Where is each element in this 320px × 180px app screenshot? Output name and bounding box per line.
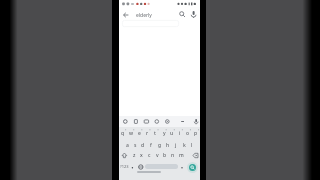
button[interactable]: e [135, 128, 143, 139]
button[interactable]: d [139, 140, 147, 151]
button[interactable]: u [168, 128, 176, 139]
button[interactable]: c [145, 150, 153, 161]
button[interactable] [130, 117, 139, 127]
button[interactable] [190, 150, 199, 161]
staticText: k [183, 142, 186, 149]
button[interactable]: a [123, 140, 131, 151]
button[interactable]: z [130, 150, 138, 161]
staticText: q [121, 130, 125, 137]
button[interactable]: i [176, 128, 184, 139]
staticText: r [146, 130, 149, 137]
button[interactable] [145, 164, 178, 169]
button[interactable]: h [164, 140, 172, 151]
staticText: i [179, 130, 181, 137]
button[interactable]: l [188, 140, 196, 151]
button[interactable] [163, 117, 172, 127]
button[interactable] [121, 117, 130, 127]
staticText: b [163, 152, 167, 159]
staticText: elderly [136, 12, 152, 19]
staticText: c [148, 152, 151, 159]
button[interactable]: b [161, 150, 169, 161]
button[interactable]: g [156, 140, 164, 151]
button[interactable]: p [192, 128, 200, 139]
staticText: n [171, 152, 175, 159]
staticText: w [129, 130, 134, 137]
staticText: m [179, 152, 184, 159]
staticText: ?123 [120, 164, 129, 169]
button[interactable]: y [160, 128, 168, 139]
button[interactable] [120, 9, 132, 21]
staticText: j [175, 142, 177, 149]
button[interactable]: s [131, 140, 139, 151]
button[interactable] [178, 162, 186, 173]
staticText: g [158, 142, 162, 149]
staticText: d [141, 142, 145, 149]
button[interactable] [188, 9, 199, 20]
staticText: t [154, 130, 156, 137]
button[interactable]: w [127, 128, 135, 139]
staticText: s [134, 142, 137, 149]
button[interactable] [129, 162, 136, 173]
button[interactable] [119, 162, 129, 173]
staticText: v [156, 152, 159, 159]
button[interactable]: f [147, 140, 155, 151]
button[interactable]: k [180, 140, 188, 151]
button[interactable]: t [151, 128, 159, 139]
button[interactable]: x [137, 150, 145, 161]
button[interactable]: n [169, 150, 177, 161]
button[interactable] [140, 117, 149, 127]
button[interactable] [120, 150, 129, 161]
staticText: p [194, 130, 198, 137]
button[interactable]: m [177, 150, 185, 161]
button[interactable] [136, 162, 145, 173]
button[interactable] [189, 164, 196, 171]
staticText: l [191, 142, 193, 149]
button[interactable]: q [119, 128, 127, 139]
button[interactable]: r [143, 128, 151, 139]
staticText: u [170, 130, 174, 137]
staticText: z [133, 152, 136, 159]
button[interactable] [177, 9, 188, 20]
button[interactable]: v [153, 150, 161, 161]
staticText: y [163, 130, 166, 137]
button[interactable]: o [184, 128, 192, 139]
staticText: a [126, 142, 129, 149]
staticText: h [166, 142, 170, 149]
button[interactable] [178, 117, 187, 127]
staticText: o [186, 130, 190, 137]
staticText: f [150, 142, 152, 149]
button[interactable] [192, 117, 201, 127]
button[interactable]: j [172, 140, 180, 151]
staticText: x [140, 152, 143, 159]
button[interactable] [152, 117, 161, 127]
staticText: e [138, 130, 141, 137]
